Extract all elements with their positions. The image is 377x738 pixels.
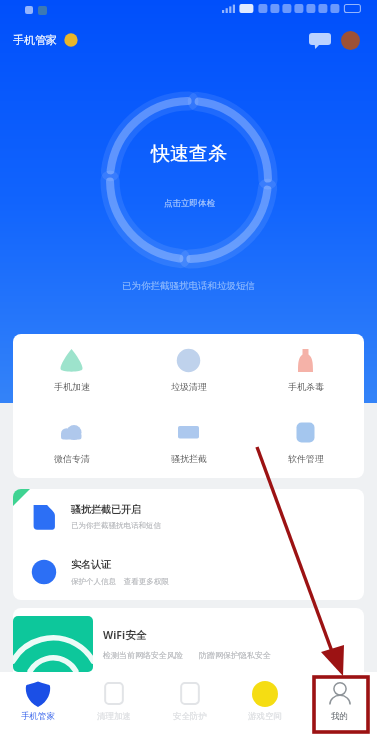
staticText: 保护个人信息 查看更多权限 <box>71 576 169 586</box>
staticText: 点击立即体检 <box>164 198 215 209</box>
button[interactable]: 骚扰拦截 <box>130 406 247 478</box>
staticText: 骚扰拦截 <box>171 453 207 464</box>
staticText: 游戏空间 <box>248 711 282 722</box>
staticText: 手机杀毒 <box>288 381 324 392</box>
staticText: 手机管家 <box>21 711 55 722</box>
button[interactable]: 安全防护 <box>152 672 227 738</box>
button[interactable]: 我的 <box>302 672 377 738</box>
staticText: 实名认证 <box>71 558 111 571</box>
staticText: 快速查杀 <box>151 142 227 166</box>
button[interactable]: 手机管家 <box>0 672 76 738</box>
button[interactable]: Messages <box>308 31 332 49</box>
button[interactable]: Profile <box>341 31 360 50</box>
button[interactable]: 骚扰拦截已开启 <box>31 489 350 544</box>
staticText: 已为你拦截骚扰电话和短信 <box>71 521 161 530</box>
staticText: WiFi安全 <box>103 628 147 642</box>
staticText: 安全防护 <box>173 711 207 722</box>
staticText: 手机加速 <box>54 381 90 392</box>
staticText: 垃圾清理 <box>171 381 207 392</box>
button[interactable]: WiFi安全 <box>13 608 364 680</box>
staticText: 防蹭网保护隐私安全 <box>199 650 271 660</box>
button[interactable]: 微信专清 <box>13 406 130 478</box>
staticText: 我的 <box>331 711 348 722</box>
button[interactable]: 手机管家 <box>13 33 78 47</box>
staticText: 骚扰拦截已开启 <box>71 503 141 516</box>
staticText: 微信专清 <box>54 453 90 464</box>
staticText: 检测当前网络安全风险 <box>103 650 183 660</box>
button[interactable]: 快速查杀 <box>106 97 272 263</box>
staticText: 手机管家 <box>13 33 57 47</box>
staticText: 清理加速 <box>97 711 131 722</box>
button[interactable]: 实名认证 <box>31 544 350 599</box>
button[interactable]: 手机加速 <box>13 334 130 406</box>
button[interactable]: 软件管理 <box>247 406 364 478</box>
button[interactable]: 清理加速 <box>76 672 152 738</box>
staticText: 已为你拦截骚扰电话和垃圾短信 <box>0 280 377 292</box>
button[interactable]: 游戏空间 <box>227 672 302 738</box>
button[interactable]: 垃圾清理 <box>130 334 247 406</box>
button[interactable]: 手机杀毒 <box>247 334 364 406</box>
staticText: 软件管理 <box>288 453 324 464</box>
